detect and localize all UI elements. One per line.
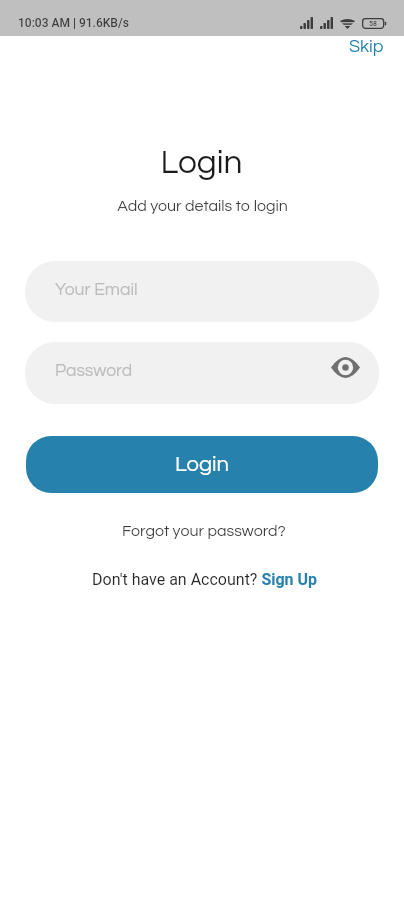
staticText: Login [175, 453, 229, 476]
staticText: Login [160, 146, 243, 181]
staticText: Skip [349, 37, 384, 56]
staticText: Add your details to login [117, 198, 288, 214]
button[interactable]: Password [25, 342, 379, 404]
button[interactable]: Show password [327, 349, 363, 385]
staticText: 58 [369, 20, 377, 28]
button[interactable]: Don't have an Account? Sign Up [84, 566, 326, 593]
staticText: Forgot your password? [122, 523, 286, 539]
button[interactable]: Login [26, 436, 378, 493]
button[interactable]: Your Email [25, 261, 379, 322]
staticText: Don't have an Account? Sign Up [92, 570, 318, 589]
button[interactable]: Skip [339, 34, 394, 59]
staticText: 10:03 AM | 91.6KB/s [18, 16, 129, 30]
button[interactable]: Forgot your password? [114, 519, 294, 543]
staticText: Password [55, 362, 133, 380]
staticText: Your Email [55, 281, 138, 299]
